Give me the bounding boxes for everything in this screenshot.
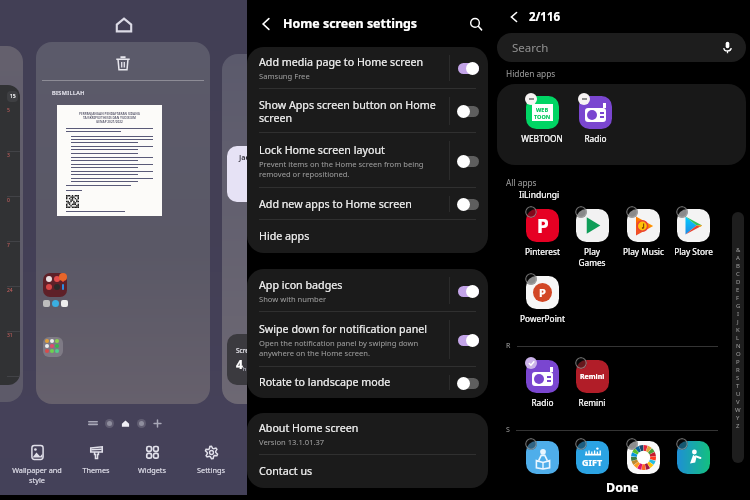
staticText: 24 [7, 287, 13, 294]
staticText: Rotate to landscape mode [259, 375, 391, 390]
button[interactable] [618, 441, 668, 474]
staticText: I [737, 310, 740, 318]
button[interactable]: Settings [180, 445, 242, 475]
staticText: R [506, 341, 511, 351]
button[interactable]: Add media page to Home screen [247, 47, 488, 89]
button[interactable]: P [517, 209, 567, 257]
staticText: Add new apps to Home screen [259, 197, 412, 212]
staticText: Radio [531, 397, 554, 408]
button[interactable]: Page list [88, 418, 98, 428]
button[interactable] [457, 333, 479, 347]
staticText: PERPANJANGAN PENDAFTARAN SIDANG [79, 112, 140, 116]
staticText: R [736, 366, 740, 374]
button[interactable] [457, 154, 479, 168]
button[interactable]: Contact us [247, 455, 488, 488]
staticText: TOON [534, 113, 551, 120]
staticText: Y [736, 414, 740, 422]
staticText: Play Store [674, 246, 713, 257]
staticText: Pinterest [525, 246, 560, 257]
staticText: F [736, 294, 740, 302]
staticText: Widgets [138, 465, 166, 475]
button[interactable]: Add page [153, 419, 162, 428]
button[interactable]: Wallpaper and style [6, 445, 68, 485]
button[interactable]: Radio [570, 96, 620, 144]
button[interactable]: Lock Home screen layout [247, 133, 488, 188]
button[interactable]: Add new apps to Home screen [247, 188, 488, 220]
staticText: P [539, 285, 546, 300]
button[interactable] [457, 284, 479, 298]
button[interactable]: Back [506, 9, 522, 25]
staticText: Prevent items on the Home screen from be… [259, 159, 449, 179]
staticText: Open the notification panel by swiping d… [259, 338, 449, 358]
other: Voice search [721, 41, 734, 54]
staticText: WEBTOON [521, 133, 563, 144]
button[interactable]: Back [257, 15, 275, 33]
staticText: Add media page to Home screen [259, 55, 424, 70]
button[interactable] [457, 376, 479, 390]
staticText: 5 [7, 107, 10, 114]
staticText: Show Apps screen button on Home screen [259, 98, 449, 125]
button[interactable]: App icon badges [247, 269, 488, 312]
staticText: Z [736, 422, 740, 430]
staticText: Jad [239, 153, 250, 163]
staticText: C [736, 270, 740, 278]
staticText: Remini [580, 372, 605, 382]
button[interactable]: Search [469, 17, 483, 31]
button[interactable] [668, 441, 718, 474]
button[interactable]: P [517, 276, 567, 324]
button[interactable]: Search [497, 33, 746, 62]
staticText: All apps [506, 177, 537, 188]
staticText: Swipe down for notification panel [259, 322, 428, 337]
staticText: P [537, 213, 549, 239]
staticText: App icon badges [259, 278, 343, 293]
button[interactable]: Remini [567, 360, 617, 408]
staticText: D [736, 278, 741, 286]
staticText: Hidden apps [506, 68, 556, 79]
button[interactable] [457, 197, 479, 211]
staticText: GENAP 2021/2022 [96, 120, 123, 124]
staticText: 2/116 [529, 9, 561, 25]
staticText: About Home screen [259, 421, 359, 436]
button[interactable]: Swipe down for notification panel [247, 312, 488, 367]
staticText: K [736, 326, 740, 334]
staticText: 0 [7, 197, 10, 204]
button[interactable]: About Home screen [247, 413, 488, 455]
staticText: Show with number [259, 294, 327, 304]
staticText: Themes [82, 465, 110, 475]
staticText: Lock Home screen layout [259, 143, 385, 158]
staticText: P [736, 358, 740, 366]
staticText: Contact us [259, 464, 313, 479]
button[interactable] [517, 441, 567, 474]
button[interactable]: Radio [517, 360, 567, 408]
button[interactable]: Themes [65, 445, 127, 475]
staticText: Remini [578, 397, 606, 408]
button[interactable]: Remove page [115, 55, 131, 71]
button[interactable] [457, 104, 479, 118]
button[interactable]: WEB [517, 96, 567, 144]
button[interactable]: Done [495, 474, 750, 500]
staticText: & [736, 246, 741, 254]
button[interactable]: Rotate to landscape mode [247, 367, 488, 398]
button[interactable]: Home [114, 15, 134, 35]
staticText: J [737, 318, 739, 326]
button[interactable]: Play Games [567, 209, 617, 268]
staticText: Done [606, 479, 639, 496]
button[interactable]: Play Store [668, 209, 718, 257]
staticText: 15 [10, 93, 16, 100]
staticText: E [736, 286, 740, 294]
button[interactable] [43, 337, 63, 357]
button[interactable] [457, 61, 479, 75]
staticText: O [736, 350, 741, 358]
button[interactable]: Show Apps screen button on Home screen [247, 89, 488, 133]
staticText: Search [512, 40, 549, 56]
staticText: 3 [7, 152, 10, 159]
button[interactable]: Hide apps [247, 220, 488, 253]
button[interactable]: GIFT [567, 441, 617, 474]
button[interactable]: Play Music [618, 209, 668, 257]
button[interactable]: Widgets [121, 445, 183, 475]
staticText: Radio [584, 133, 607, 144]
button[interactable] [43, 273, 67, 297]
staticText: PowerPoint [520, 313, 565, 324]
staticText: A [736, 254, 740, 262]
staticText: G [736, 302, 741, 310]
